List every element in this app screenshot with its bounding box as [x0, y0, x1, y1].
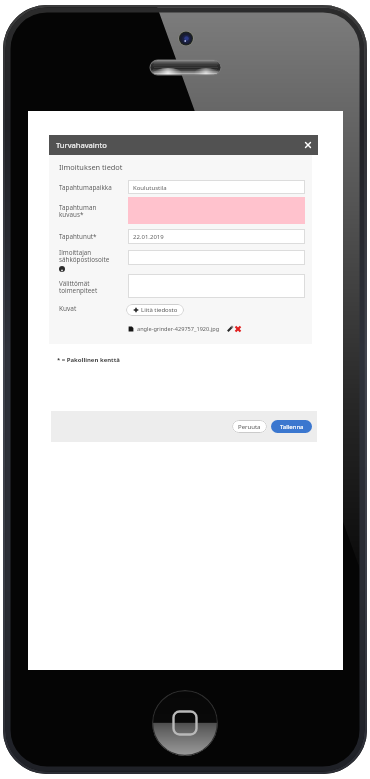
- staticText: Kuvat: [59, 304, 77, 313]
- button[interactable]: Koulutustila: [128, 180, 305, 194]
- button[interactable]: angle-grinder-429757_1920.jpg: [128, 323, 242, 335]
- staticText: Turvahavainto: [56, 140, 107, 150]
- button[interactable]: Liitä tiedosto: [126, 304, 184, 316]
- staticText: Välittömät toimenpiteet: [59, 279, 98, 294]
- staticText: Tapahtunut*: [59, 232, 97, 241]
- button[interactable]: Muokkaa: [226, 325, 234, 333]
- staticText: * = Pakollinen kenttä: [57, 356, 120, 364]
- button[interactable]: Tallenna: [271, 420, 312, 433]
- staticText: Ilmoittajan sähköpostiosoite: [59, 248, 110, 263]
- staticText: 22.01.2019: [133, 233, 164, 241]
- staticText: Tapahtuman kuvaus*: [59, 203, 97, 218]
- staticText: Tallenna: [280, 423, 304, 431]
- staticText: Koulutustila: [133, 184, 167, 192]
- button[interactable]: Turvahavainto: [49, 135, 318, 155]
- button[interactable]: 22.01.2019: [128, 229, 305, 244]
- staticText: Ilmoituksen tiedot: [59, 162, 123, 172]
- staticText: Liitä tiedosto: [141, 306, 178, 314]
- button[interactable]: Sulje: [298, 135, 318, 155]
- button[interactable]: Home: [152, 690, 218, 756]
- button[interactable]: Lisätietoa: [59, 266, 65, 272]
- staticText: Peruuta: [238, 423, 261, 431]
- button[interactable]: [128, 274, 305, 298]
- button[interactable]: Poista: [234, 325, 242, 333]
- staticText: Tapahtumapaikka: [59, 183, 112, 192]
- button[interactable]: Peruuta: [232, 420, 267, 433]
- staticText: angle-grinder-429757_1920.jpg: [137, 325, 220, 333]
- button[interactable]: [128, 250, 305, 265]
